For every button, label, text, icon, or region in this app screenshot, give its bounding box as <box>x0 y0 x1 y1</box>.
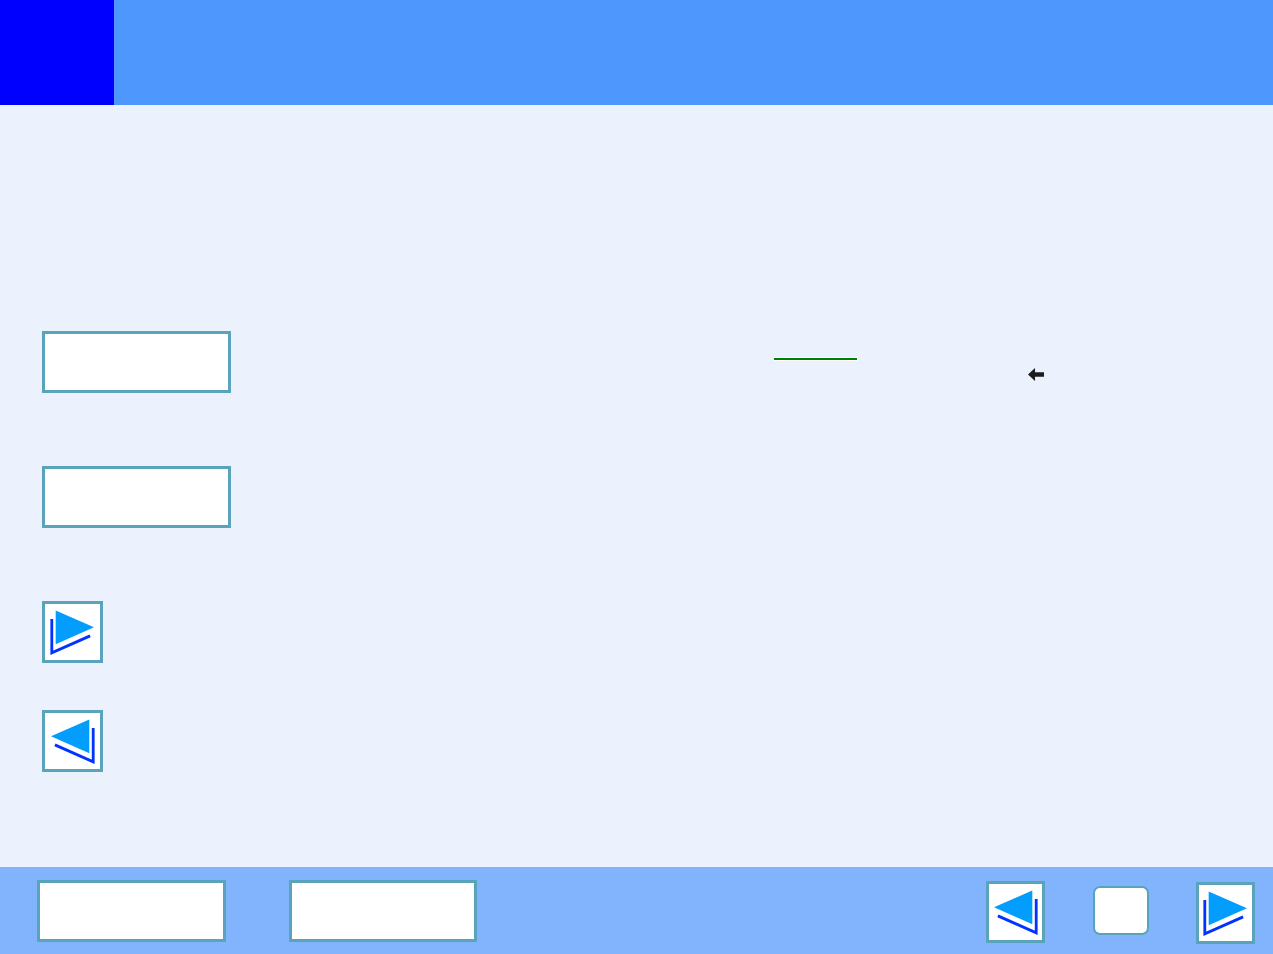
other: Back <box>1028 368 1044 381</box>
button[interactable]: Play <box>45 604 100 660</box>
button[interactable]: Previous <box>45 713 100 769</box>
button[interactable]: Stop <box>1095 888 1147 933</box>
button[interactable]: Previous <box>989 884 1042 940</box>
button[interactable]: Play <box>1199 885 1252 941</box>
